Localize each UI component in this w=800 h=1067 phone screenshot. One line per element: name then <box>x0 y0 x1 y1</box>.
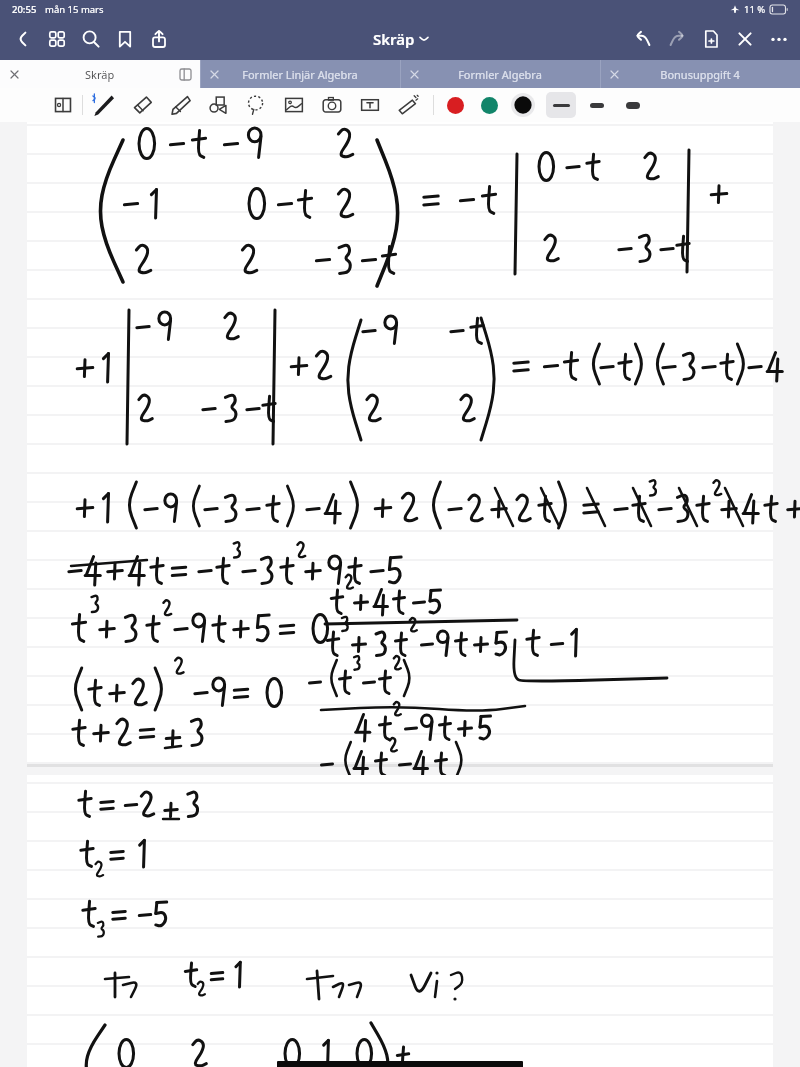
staticText: mån 15 mars <box>45 3 104 16</box>
button[interactable]: Highlighter <box>161 88 199 122</box>
button[interactable]: Thick stroke <box>618 92 648 118</box>
button[interactable]: Insert image <box>275 88 313 122</box>
button[interactable]: Shapes <box>199 88 237 122</box>
button[interactable]: Medium stroke <box>582 92 612 118</box>
button[interactable]: More <box>762 22 796 56</box>
button[interactable]: New page <box>694 22 728 56</box>
button[interactable]: Back <box>6 22 40 56</box>
staticText: Bonusuppgift 4 <box>660 67 740 82</box>
button[interactable]: Pages <box>40 22 74 56</box>
staticText: 20:55 <box>12 3 37 16</box>
button[interactable]: Camera <box>313 88 351 122</box>
button[interactable]: Thin stroke, selected <box>546 92 576 118</box>
button[interactable]: Skräp <box>373 29 428 49</box>
button[interactable]: Eraser <box>123 88 161 122</box>
button[interactable]: Split view <box>176 65 194 83</box>
button[interactable]: Page settings <box>44 88 82 122</box>
button[interactable]: Formler Algebra <box>400 60 600 88</box>
button[interactable]: Green <box>476 92 502 118</box>
button[interactable]: Close tab <box>406 66 422 82</box>
staticText: 11 % <box>744 3 766 16</box>
button[interactable]: Bonusuppgift 4 <box>600 60 800 88</box>
button[interactable]: Undo <box>626 22 660 56</box>
staticText: Formler Linjär Algebra <box>242 67 358 82</box>
staticText: Skräp <box>373 29 415 49</box>
button[interactable]: Close tab <box>6 66 22 82</box>
staticText: Formler Algebra <box>458 67 542 82</box>
button[interactable]: Skräp <box>0 60 200 88</box>
button[interactable]: Close tab <box>206 66 222 82</box>
button[interactable]: Close <box>728 22 762 56</box>
button[interactable]: Share <box>142 22 176 56</box>
button[interactable]: Bookmark <box>108 22 142 56</box>
button[interactable]: Formler Linjär Algebra <box>200 60 400 88</box>
button[interactable]: Black, selected <box>510 92 536 118</box>
staticText: Skräp <box>85 67 115 82</box>
button[interactable]: Close tab <box>606 66 622 82</box>
button[interactable]: Sticker <box>389 88 427 122</box>
button[interactable]: Search <box>74 22 108 56</box>
button[interactable]: Pen <box>83 88 123 122</box>
button[interactable]: Text box <box>351 88 389 122</box>
button[interactable]: Redo <box>660 22 694 56</box>
button[interactable]: Lasso <box>237 88 275 122</box>
button[interactable]: Red <box>442 92 468 118</box>
